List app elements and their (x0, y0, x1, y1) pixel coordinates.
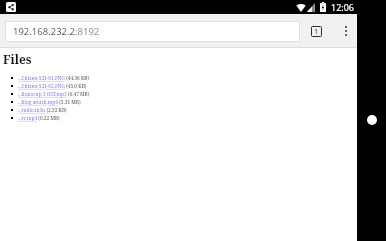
button[interactable]: Tabs (307, 22, 325, 40)
staticText: Files (3, 51, 32, 67)
staticText: ...Citizen-521-01.PNG (44.36 KB) (18, 75, 90, 82)
button[interactable]: 192.168.232.2:8192 (5, 21, 300, 42)
button[interactable]: ...radio.m3u (2.52 KB) (0, 106, 357, 114)
staticText: 1 (314, 27, 319, 37)
button[interactable]: More options (338, 23, 354, 39)
staticText: ...blog attack.mp4 (5.31 MB) (18, 99, 81, 106)
button[interactable]: ...tv.mp4 (0.22 MB) (0, 114, 357, 122)
button[interactable]: ...Citizen-521-01.PNG (44.36 KB) (0, 74, 357, 82)
staticText: ...Robocup 3 OST.mp3 (6.47 MB) (18, 91, 90, 98)
button[interactable]: Home (367, 115, 377, 125)
button[interactable]: ...Citizen-521-02.PNG (45.0 KB) (0, 82, 357, 90)
button[interactable]: ...blog attack.mp4 (5.31 MB) (0, 98, 357, 106)
staticText: ...Citizen-521-02.PNG (45.0 KB) (18, 83, 87, 90)
staticText: ...tv.mp4 (0.22 MB) (18, 115, 60, 122)
button[interactable]: ...Robocup 3 OST.mp3 (6.47 MB) (0, 90, 357, 98)
staticText: ...radio.m3u (2.52 KB) (18, 107, 67, 114)
staticText: 12:06 (331, 1, 355, 13)
staticText: 192.168.232.2:8192 (13, 25, 100, 38)
